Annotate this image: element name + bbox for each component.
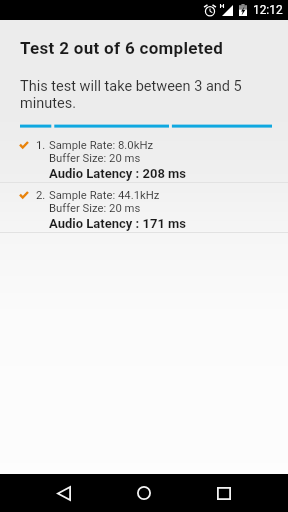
staticText: Test 2 out of 6 completed bbox=[20, 38, 224, 58]
staticText: This test will take between 3 and 5 minu… bbox=[20, 78, 274, 112]
staticText: Sample Rate: 8.0kHz bbox=[49, 139, 154, 152]
staticText: 1. bbox=[36, 139, 46, 152]
staticText: Audio Latency : 171 ms bbox=[49, 216, 187, 231]
button[interactable]: Recent apps bbox=[198, 474, 250, 512]
staticText: 12:12 bbox=[253, 3, 283, 17]
button[interactable]: Home bbox=[118, 474, 170, 512]
staticText: Audio Latency : 208 ms bbox=[49, 166, 187, 181]
button[interactable]: Back bbox=[38, 474, 90, 512]
staticText: Buffer Size: 20 ms bbox=[49, 152, 141, 165]
button[interactable]: 1. bbox=[0, 133, 288, 182]
staticText: Buffer Size: 20 ms bbox=[49, 202, 141, 215]
staticText: Sample Rate: 44.1kHz bbox=[49, 189, 160, 202]
staticText: 2. bbox=[36, 189, 46, 202]
button[interactable]: 2. bbox=[0, 183, 288, 232]
